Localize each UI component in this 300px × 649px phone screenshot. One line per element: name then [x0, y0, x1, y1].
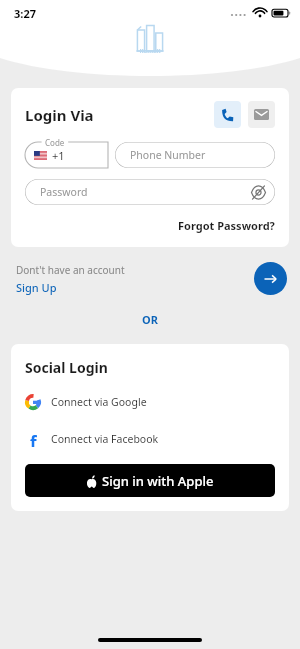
button[interactable]: Dont't have an account: [16, 263, 125, 295]
staticText: Dont't have an account: [16, 263, 125, 277]
button[interactable]: Connect via Google: [25, 391, 275, 413]
staticText: Connect via Facebook: [51, 432, 159, 446]
staticText: f: [30, 431, 37, 447]
staticText: +1: [52, 148, 65, 163]
button[interactable]: Login with email: [248, 101, 275, 128]
button[interactable]: Show password: [250, 184, 266, 200]
staticText: Sign Up: [16, 280, 57, 295]
button[interactable]: Sign in with Apple: [25, 464, 275, 497]
staticText: Connect via Google: [51, 395, 147, 409]
staticText: Password: [40, 185, 88, 199]
button[interactable]: f: [25, 428, 275, 450]
staticText: Login Via: [25, 105, 94, 125]
button[interactable]: Password: [25, 179, 275, 205]
staticText: Phone Number: [130, 148, 206, 162]
button[interactable]: Login with phone: [214, 101, 241, 128]
staticText: 3:27: [14, 6, 36, 21]
staticText: Code: [45, 137, 65, 148]
button[interactable]: Phone Number: [115, 142, 275, 168]
staticText: OR: [142, 312, 158, 327]
button[interactable]: Code: [25, 142, 108, 168]
staticText: KomeX: [139, 47, 161, 55]
staticText: Sign in with Apple: [102, 472, 214, 490]
button[interactable]: Continue: [254, 262, 287, 295]
button[interactable]: Forgot Password?: [178, 218, 275, 233]
staticText: Social Login: [25, 358, 108, 377]
